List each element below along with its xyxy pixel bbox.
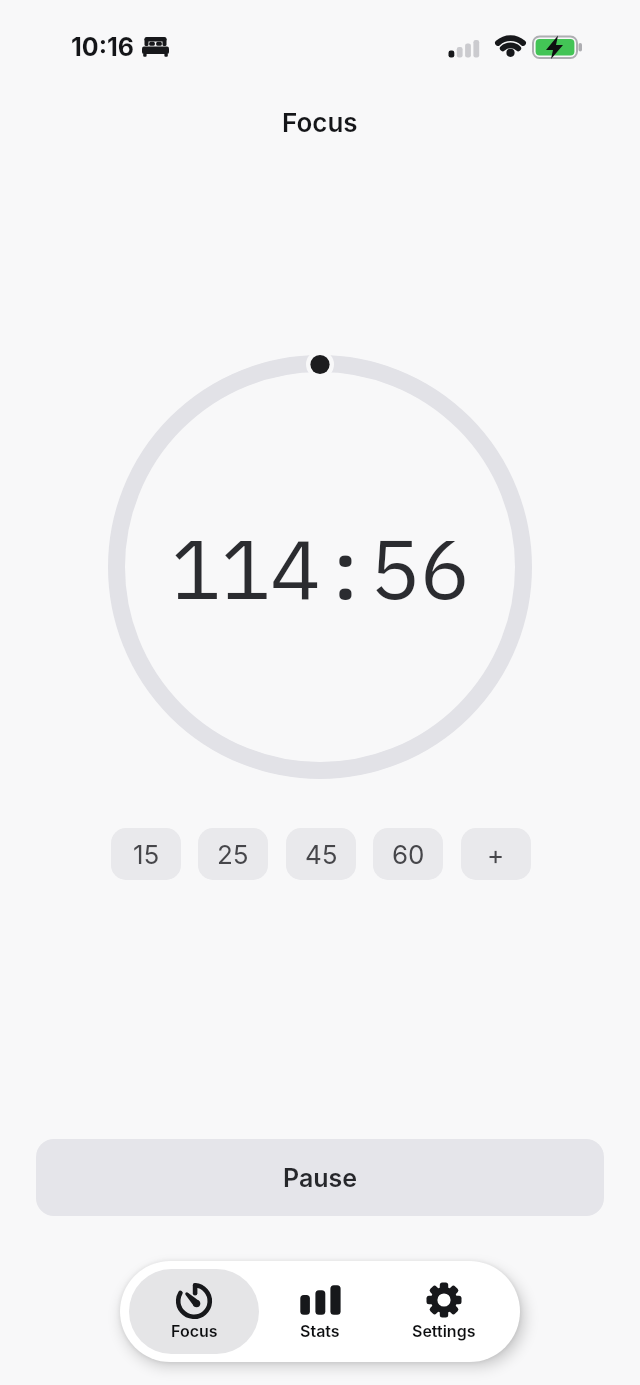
- staticText: 60: [392, 839, 425, 870]
- button[interactable]: 60: [373, 828, 443, 880]
- button[interactable]: 25: [198, 828, 268, 880]
- button[interactable]: Pause: [36, 1139, 604, 1216]
- staticText: +: [487, 839, 505, 870]
- button[interactable]: 45: [286, 828, 356, 880]
- staticText: Pause: [283, 1163, 358, 1193]
- button[interactable]: Stats: [265, 1265, 375, 1358]
- staticText: 114:56: [171, 514, 470, 622]
- button[interactable]: 15: [111, 828, 181, 880]
- button[interactable]: Settings: [388, 1265, 500, 1358]
- staticText: 25: [217, 839, 249, 870]
- staticText: Stats: [300, 1321, 340, 1340]
- staticText: Settings: [412, 1321, 476, 1340]
- button[interactable]: +: [461, 828, 531, 880]
- staticText: Focus: [282, 107, 358, 138]
- staticText: 15: [133, 839, 160, 870]
- staticText: 10:16: [71, 32, 135, 62]
- staticText: 45: [305, 839, 338, 870]
- staticText: Focus: [171, 1321, 218, 1340]
- button[interactable]: [129, 1269, 259, 1354]
